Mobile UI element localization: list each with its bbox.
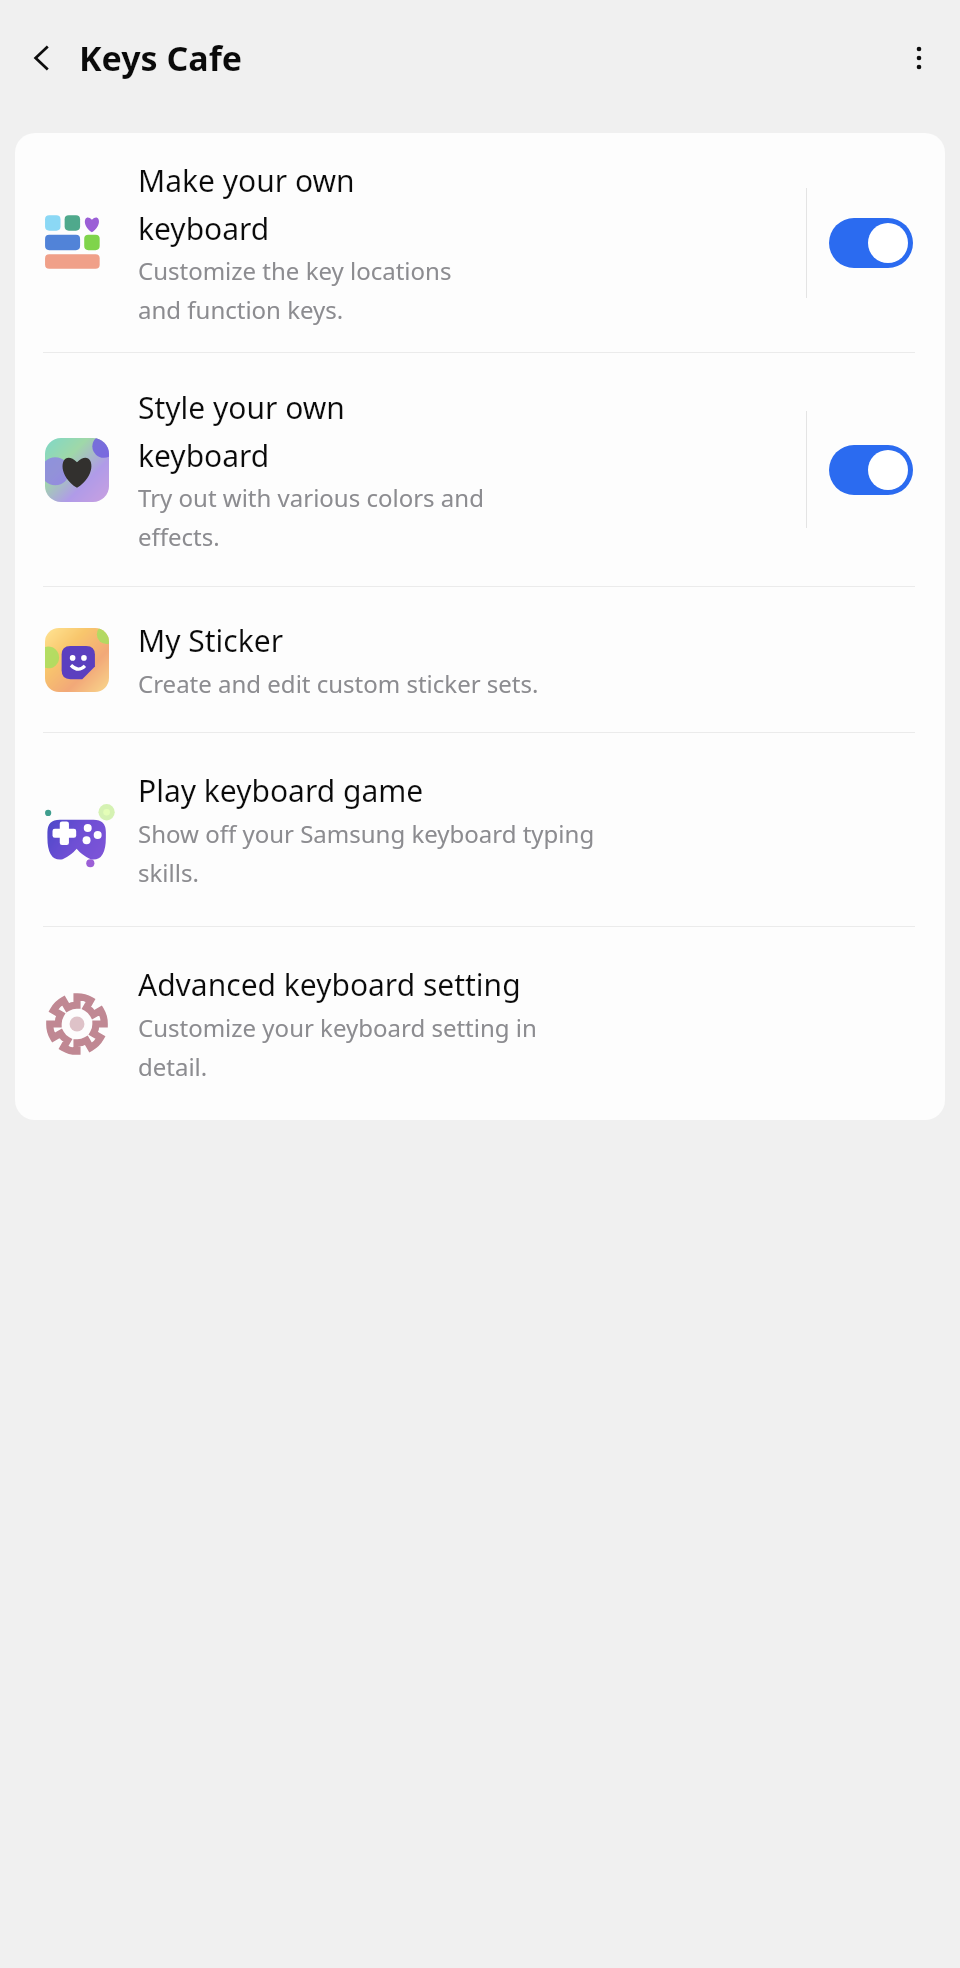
staticText: Customize the key locations and function…	[138, 254, 452, 326]
staticText: Keys Cafe	[79, 35, 243, 81]
staticText: Style your own keyboard	[138, 387, 345, 475]
staticText: Customize your keyboard setting in detai…	[138, 1011, 537, 1083]
staticText: Create and edit custom sticker sets.	[138, 667, 539, 700]
button[interactable]: More options	[890, 29, 948, 87]
button[interactable]: My Sticker	[15, 587, 945, 732]
staticText: My Sticker	[138, 620, 284, 661]
staticText: Show off your Samsung keyboard typing sk…	[138, 817, 595, 889]
staticText: Try out with various colors and effects.	[138, 481, 484, 553]
button[interactable]: Navigate up	[14, 30, 70, 86]
button[interactable]: Advanced keyboard setting	[15, 927, 945, 1120]
staticText: Make your own keyboard	[138, 160, 355, 248]
button[interactable]: Toggle setting	[827, 440, 915, 500]
button[interactable]: Make your own keyboard	[15, 133, 945, 352]
staticText: Advanced keyboard setting	[138, 964, 521, 1005]
button[interactable]: Style your own keyboard	[15, 353, 945, 586]
button[interactable]: Toggle setting	[827, 213, 915, 273]
button[interactable]: Play keyboard game	[15, 733, 945, 926]
staticText: Play keyboard game	[138, 770, 424, 811]
